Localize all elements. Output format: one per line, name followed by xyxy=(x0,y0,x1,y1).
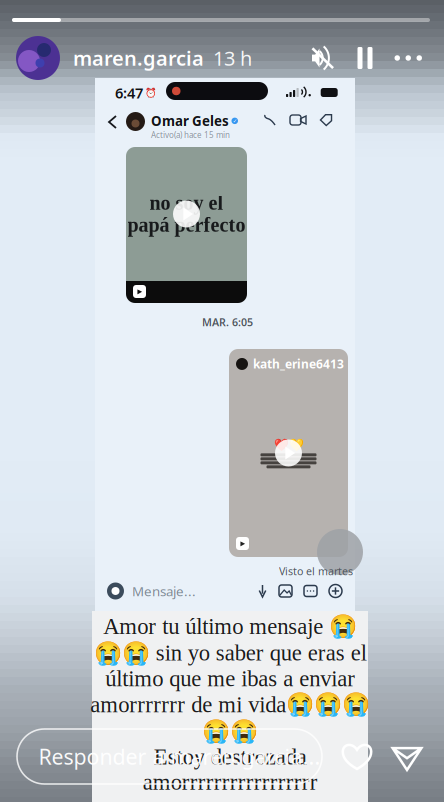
staticText: Amor tu último mensaje 😭 😭😭 sin yo saber… xyxy=(90,613,370,795)
button[interactable]: Pause xyxy=(346,47,383,69)
staticText: papá perfecto xyxy=(127,214,245,236)
staticText: kath_erine6413 xyxy=(253,356,344,372)
staticText: 6:47 xyxy=(115,83,143,102)
staticText: ❤️💛 xyxy=(273,438,303,451)
staticText: Visto el martes xyxy=(279,564,353,578)
button[interactable]: More options xyxy=(383,55,433,61)
staticText: MAR. 6:05 xyxy=(202,315,253,329)
button[interactable]: More xyxy=(323,584,342,597)
staticText: Omar Geles xyxy=(151,112,229,130)
staticText: ✓ xyxy=(233,118,237,124)
staticText: ⏰ xyxy=(145,87,157,98)
button[interactable]: Sticker xyxy=(298,585,323,596)
button[interactable]: Voice message xyxy=(252,585,273,597)
button[interactable]: Like xyxy=(342,743,371,769)
staticText: Activo(a) hace 15 min xyxy=(151,130,230,140)
button[interactable]: Back xyxy=(109,116,116,128)
button[interactable]: maren.garcia xyxy=(16,36,252,80)
staticText: maren.garcia xyxy=(73,45,204,71)
button[interactable]: Video call xyxy=(290,115,306,125)
button[interactable]: Mute xyxy=(298,45,346,71)
button[interactable]: Share xyxy=(392,742,422,770)
button[interactable]: Photo xyxy=(273,585,298,597)
button[interactable]: Call xyxy=(264,114,276,126)
staticText: Mensaje... xyxy=(132,582,196,600)
button[interactable]: Tag xyxy=(320,114,332,126)
staticText: Responder a maren.garcia... xyxy=(38,742,320,771)
staticText: 13 h xyxy=(213,45,252,71)
button[interactable]: Responder a maren.garcia... xyxy=(17,729,322,784)
staticText: no soy el xyxy=(149,192,223,214)
